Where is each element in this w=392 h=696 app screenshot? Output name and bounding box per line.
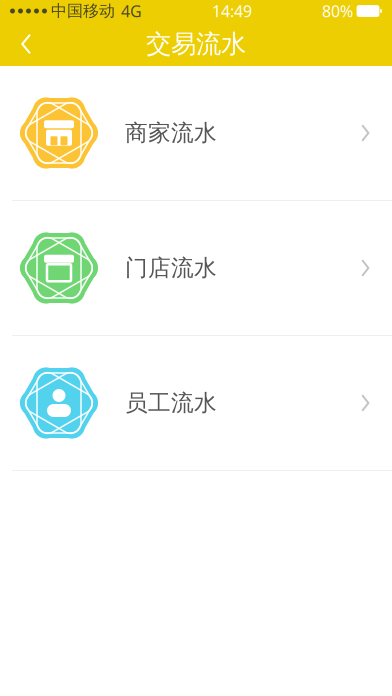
staticText: 商家流水 xyxy=(125,119,217,147)
button[interactable]: Back xyxy=(0,22,52,66)
staticText: 14:49 xyxy=(212,0,252,22)
staticText: 交易流水 xyxy=(146,28,246,59)
staticText: 门店流水 xyxy=(125,254,217,282)
button[interactable]: 门店流水 xyxy=(0,201,392,335)
staticText: 中国移动 xyxy=(51,1,115,21)
staticText: 80% xyxy=(322,0,353,22)
staticText: 员工流水 xyxy=(125,389,217,417)
staticText: 4G xyxy=(121,0,142,22)
button[interactable]: 商家流水 xyxy=(0,66,392,200)
button[interactable]: 员工流水 xyxy=(0,336,392,470)
